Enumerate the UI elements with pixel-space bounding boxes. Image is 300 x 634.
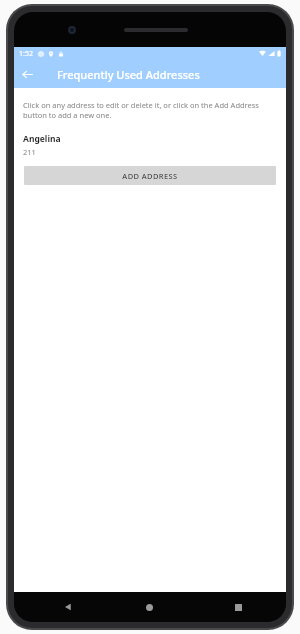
staticText: Click on any address to edit or delete i…: [23, 100, 277, 120]
button[interactable]: ADD ADDRESS: [24, 166, 276, 185]
button[interactable]: Angelina: [14, 133, 286, 157]
button[interactable]: Back: [17, 64, 37, 84]
button[interactable]: Home: [139, 597, 159, 617]
staticText: 211: [23, 147, 36, 157]
staticText: ADD ADDRESS: [122, 171, 178, 181]
staticText: 1:52: [19, 49, 33, 59]
button[interactable]: Back: [58, 597, 78, 617]
button[interactable]: Recent apps: [228, 597, 248, 617]
staticText: Angelina: [23, 133, 61, 145]
staticText: Frequently Used Addresses: [57, 67, 200, 82]
